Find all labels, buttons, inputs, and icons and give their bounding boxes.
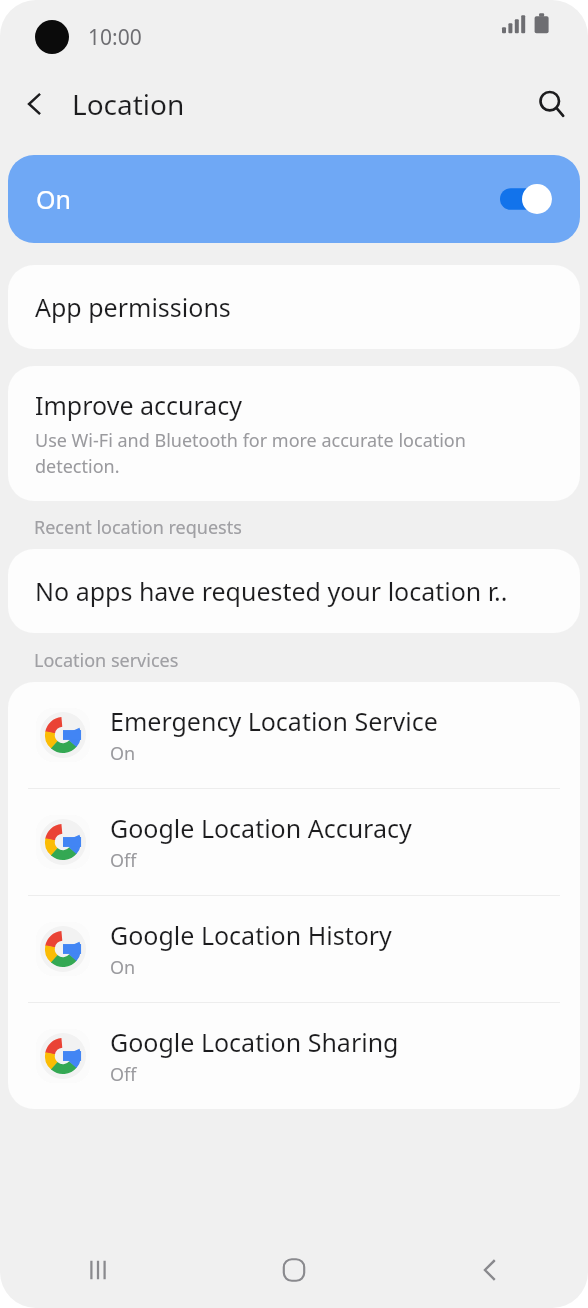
- staticText: Google Location History: [110, 918, 392, 952]
- button[interactable]: Search: [524, 76, 580, 132]
- staticText: On: [110, 955, 136, 980]
- button[interactable]: Google Location Sharing: [8, 1003, 580, 1109]
- button[interactable]: Back: [8, 77, 62, 131]
- button[interactable]: Recents: [0, 1232, 196, 1308]
- staticText: Off: [110, 1062, 137, 1087]
- staticText: App permissions: [35, 290, 231, 324]
- staticText: Improve accuracy: [35, 388, 243, 422]
- button[interactable]: On: [8, 155, 580, 243]
- staticText: Use Wi-Fi and Bluetooth for more accurat…: [35, 428, 553, 479]
- button[interactable]: Emergency Location Service: [8, 682, 580, 788]
- staticText: On: [110, 741, 136, 766]
- button[interactable]: App permissions: [8, 265, 580, 349]
- staticText: On: [36, 182, 71, 216]
- staticText: Location: [72, 85, 185, 123]
- button[interactable]: No apps have requested your location r..: [8, 549, 580, 633]
- button[interactable]: Back: [392, 1232, 588, 1308]
- button[interactable]: Home: [196, 1232, 392, 1308]
- staticText: 10:00: [88, 23, 142, 52]
- staticText: Location services: [34, 648, 179, 673]
- button[interactable]: Improve accuracy: [8, 366, 580, 501]
- button[interactable]: Google Location History: [8, 896, 580, 1002]
- staticText: Off: [110, 848, 137, 873]
- staticText: Google Location Sharing: [110, 1025, 399, 1059]
- staticText: Recent location requests: [34, 515, 242, 540]
- staticText: No apps have requested your location r..: [35, 574, 508, 608]
- staticText: Emergency Location Service: [110, 704, 438, 738]
- button[interactable]: Google Location Accuracy: [8, 789, 580, 895]
- staticText: Google Location Accuracy: [110, 811, 412, 845]
